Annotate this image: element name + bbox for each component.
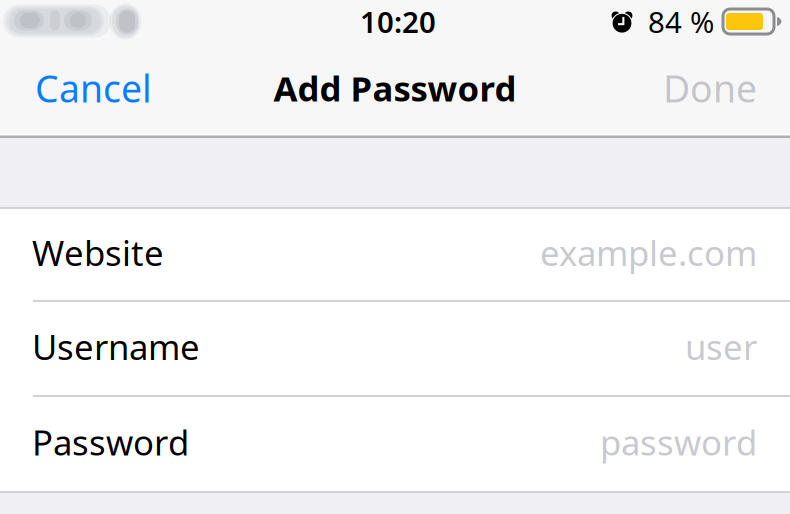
staticText: user [685, 323, 757, 369]
button[interactable]: Cancel [0, 49, 168, 132]
button[interactable]: Done [647, 49, 790, 132]
staticText: Password [32, 419, 189, 465]
staticText: Username [32, 323, 200, 369]
staticText: Done [663, 63, 757, 113]
staticText: password [600, 419, 757, 465]
staticText: Cancel [35, 63, 152, 113]
button[interactable]: Website [0, 209, 790, 302]
button[interactable]: Password [0, 397, 790, 493]
staticText: Website [32, 229, 164, 275]
staticText: example.com [540, 229, 757, 275]
button[interactable]: Username [0, 302, 790, 397]
staticText: Add Password [273, 65, 516, 111]
staticText: 84 % [648, 2, 714, 41]
staticText: 10:20 [360, 2, 436, 41]
